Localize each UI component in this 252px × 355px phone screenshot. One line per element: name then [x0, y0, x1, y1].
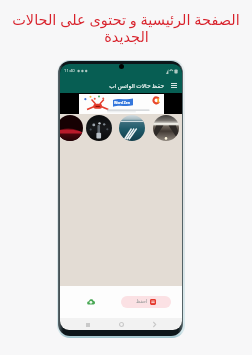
staticText: Word Zen — [114, 100, 130, 105]
staticText: حفظ حالات الواتس اب — [65, 82, 164, 90]
staticText: احفظ — [136, 299, 148, 305]
staticText: الجديدة — [104, 29, 149, 46]
button[interactable]: Recents — [82, 319, 93, 330]
staticText: 11:40 — [64, 68, 75, 74]
button[interactable]: Status 2 — [86, 115, 112, 141]
button[interactable]: Home — [116, 319, 127, 330]
button[interactable]: Menu — [169, 81, 178, 90]
button[interactable]: Status 1 — [60, 115, 83, 141]
button[interactable]: Status 3 — [119, 115, 145, 141]
button[interactable]: احفظ — [121, 296, 171, 308]
button[interactable]: Status 4 — [153, 115, 179, 141]
button[interactable]: Downloads — [85, 296, 97, 308]
staticText: الصفحة الرئيسية و تحتوى على الحالات — [12, 9, 240, 29]
button[interactable]: Back — [149, 319, 160, 330]
